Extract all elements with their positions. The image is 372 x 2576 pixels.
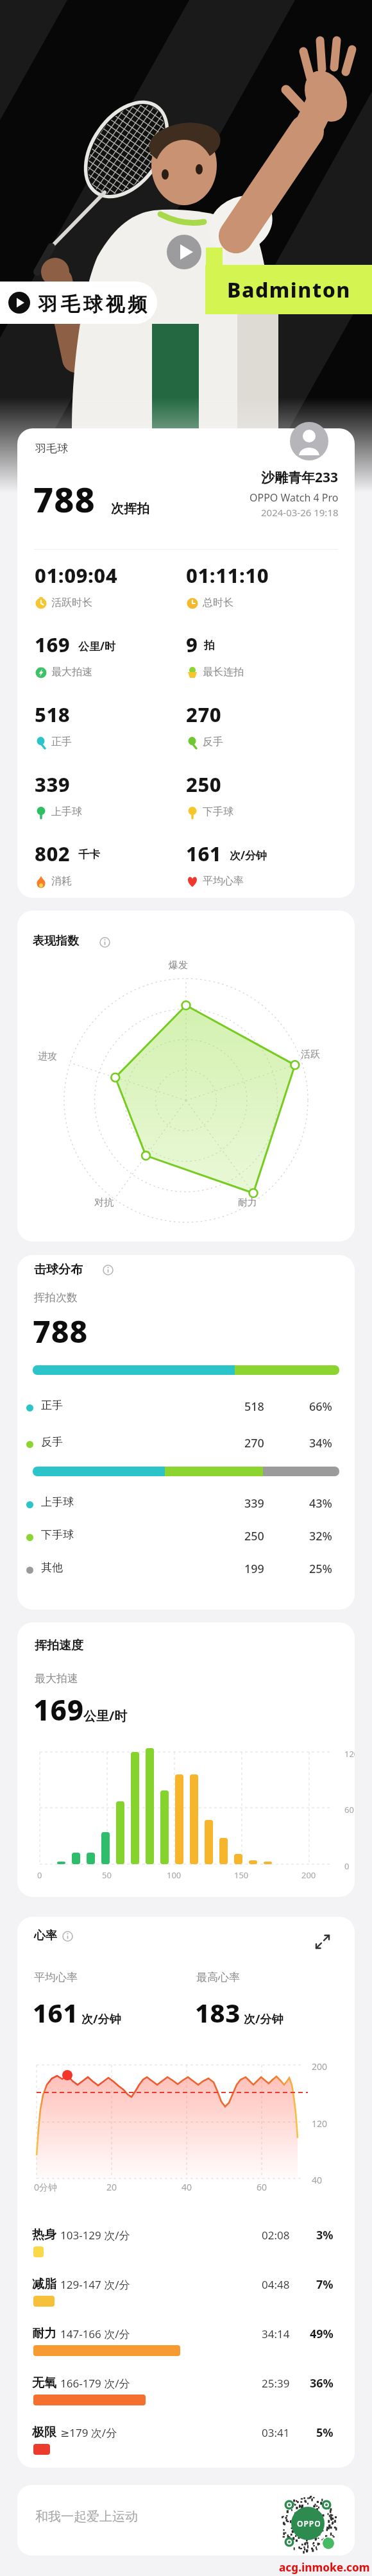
staticText: 3%: [316, 2227, 334, 2243]
staticText: 34:14: [262, 2327, 290, 2341]
staticText: 最大拍速: [51, 666, 92, 678]
staticText: 正手: [51, 736, 72, 748]
staticText: 43%: [309, 1495, 332, 1511]
staticText: 次/分钟: [81, 2011, 121, 2027]
staticText: OPPO: [297, 2518, 321, 2529]
staticText: 挥拍速度: [35, 1638, 83, 1653]
staticText: 60: [257, 2181, 267, 2193]
staticText: 公里/时: [78, 639, 116, 653]
staticText: 200: [312, 2060, 328, 2073]
staticText: 169: [35, 631, 71, 658]
staticText: 518: [35, 701, 71, 728]
staticText: 平均心率: [203, 875, 244, 888]
staticText: 消耗: [51, 875, 72, 888]
button[interactable]: [315, 1934, 330, 1949]
staticText: 518: [244, 1399, 264, 1415]
button[interactable]: 羽毛球视频: [0, 282, 157, 324]
staticText: 挥拍次数: [34, 1291, 78, 1304]
staticText: 最长连拍: [203, 666, 244, 678]
staticText: 次/分钟: [230, 848, 267, 863]
staticText: 耐力: [32, 2326, 56, 2341]
staticText: 羽毛球: [35, 442, 68, 455]
button[interactable]: [167, 235, 201, 269]
staticText: 01:11:10: [186, 562, 269, 589]
staticText: 34%: [309, 1435, 332, 1451]
staticText: 耐力: [238, 1197, 257, 1209]
staticText: 147-166 次/分: [60, 2327, 130, 2341]
staticText: 千卡: [78, 848, 100, 861]
staticText: 无氧: [32, 2375, 56, 2391]
staticText: 反手: [203, 736, 223, 748]
staticText: 25:39: [262, 2376, 290, 2391]
staticText: 788: [33, 1310, 89, 1352]
staticText: 32%: [309, 1528, 332, 1544]
staticText: 公里/时: [83, 1707, 128, 1724]
staticText: 250: [186, 771, 222, 798]
staticText: 沙雕青年233: [261, 468, 339, 487]
staticText: 最高心率: [196, 1971, 240, 1984]
staticText: Badminton: [227, 276, 351, 304]
staticText: 对抗: [94, 1197, 114, 1209]
staticText: 36%: [310, 2375, 334, 2391]
staticText: 339: [244, 1495, 264, 1511]
staticText: 250: [244, 1528, 264, 1544]
staticText: 上手球: [51, 805, 82, 818]
staticText: 199: [244, 1561, 264, 1577]
staticText: 减脂: [32, 2277, 56, 2292]
staticText: 0: [344, 1860, 350, 1872]
staticText: 120: [312, 2117, 328, 2130]
staticText: 羽毛球视频: [37, 292, 149, 317]
staticText: 183: [195, 1995, 241, 2030]
staticText: 进攻: [38, 1050, 57, 1063]
staticText: ≥179 次/分: [60, 2425, 117, 2440]
staticText: 0分钟: [34, 2181, 58, 2193]
staticText: 270: [186, 701, 222, 728]
staticText: 03:41: [262, 2425, 290, 2440]
staticText: 拍: [204, 639, 215, 652]
staticText: 270: [244, 1435, 264, 1451]
staticText: 161: [33, 1995, 78, 2030]
staticText: 5%: [316, 2425, 334, 2441]
staticText: 49%: [310, 2326, 334, 2342]
staticText: 表现指数: [33, 934, 79, 948]
staticText: 2024-03-26 19:18: [261, 506, 339, 519]
staticText: 129-147 次/分: [60, 2277, 130, 2292]
staticText: 66%: [309, 1399, 332, 1415]
staticText: 120: [344, 1748, 355, 1760]
staticText: 爆发: [169, 959, 188, 972]
staticText: 下手球: [41, 1528, 74, 1542]
staticText: 100: [167, 1869, 182, 1881]
staticText: 200: [301, 1869, 316, 1881]
staticText: 活跃: [301, 1048, 320, 1061]
staticText: 166-179 次/分: [60, 2376, 130, 2391]
staticText: 01:09:04: [35, 562, 118, 589]
staticText: 总时长: [203, 596, 233, 609]
staticText: 次挥拍: [111, 501, 149, 517]
staticText: 60: [344, 1804, 354, 1815]
staticText: 50: [102, 1869, 112, 1881]
staticText: 最大拍速: [35, 1672, 78, 1685]
staticText: acg.inmoke.com: [279, 2560, 370, 2575]
staticText: 上手球: [41, 1495, 74, 1509]
staticText: 热身: [32, 2227, 56, 2243]
staticText: 正手: [41, 1399, 63, 1412]
staticText: 次/分钟: [244, 2011, 283, 2027]
staticText: 20: [106, 2181, 117, 2193]
staticText: 161: [186, 840, 222, 867]
staticText: 802: [35, 840, 71, 867]
staticText: 103-129 次/分: [60, 2228, 130, 2243]
staticText: 25%: [309, 1561, 332, 1577]
staticText: 40: [182, 2181, 192, 2193]
staticText: 04:48: [262, 2277, 290, 2292]
staticText: 平均心率: [34, 1971, 78, 1984]
staticText: 下手球: [203, 805, 233, 818]
staticText: 339: [35, 771, 71, 798]
button[interactable]: [290, 422, 328, 460]
staticText: 02:08: [262, 2228, 290, 2243]
staticText: 0: [37, 1869, 42, 1881]
staticText: 反手: [41, 1435, 63, 1449]
button[interactable]: Badminton: [205, 265, 372, 314]
staticText: 活跃时长: [51, 596, 92, 609]
staticText: 7%: [316, 2277, 334, 2293]
staticText: 击球分布: [34, 1262, 83, 1277]
